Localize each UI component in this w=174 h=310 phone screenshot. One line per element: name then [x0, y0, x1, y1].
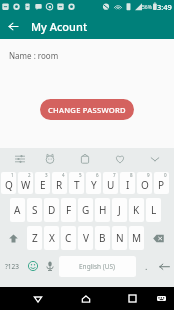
- staticText: Q: [5, 178, 13, 192]
- staticText: 3:49: [157, 2, 172, 12]
- button[interactable]: A: [10, 198, 25, 222]
- staticText: C: [65, 231, 72, 245]
- staticText: U: [107, 178, 115, 192]
- button[interactable]: M: [129, 226, 144, 250]
- staticText: B: [99, 231, 106, 245]
- staticText: Y: [91, 178, 97, 192]
- button[interactable]: D: [44, 198, 59, 222]
- staticText: 7: [113, 172, 116, 178]
- button[interactable]: G: [78, 198, 93, 222]
- staticText: P: [158, 178, 165, 192]
- staticText: 1: [11, 172, 14, 178]
- button[interactable]: Stickers: [39, 148, 61, 170]
- staticText: G: [82, 203, 90, 217]
- staticText: L: [151, 203, 157, 217]
- button[interactable]: Z: [27, 226, 42, 250]
- button[interactable]: Emoji: [24, 252, 42, 280]
- button[interactable]: Period: [137, 252, 155, 280]
- button[interactable]: Home: [75, 287, 97, 310]
- button[interactable]: H: [95, 198, 110, 222]
- staticText: W: [21, 178, 31, 192]
- button[interactable]: Y: [86, 172, 101, 194]
- staticText: 0: [164, 172, 167, 178]
- staticText: 5: [79, 172, 82, 178]
- button[interactable]: CHANGE PASSWORD: [40, 99, 134, 120]
- staticText: 3: [45, 172, 48, 178]
- staticText: V: [83, 231, 89, 245]
- staticText: E: [40, 178, 46, 192]
- staticText: ?123: [5, 262, 19, 271]
- button[interactable]: T: [69, 172, 84, 194]
- button[interactable]: English (US): [59, 256, 136, 277]
- staticText: O: [141, 178, 149, 192]
- button[interactable]: J: [112, 198, 127, 222]
- button[interactable]: Q: [1, 172, 16, 194]
- staticText: H: [99, 203, 107, 217]
- button[interactable]: Back: [0, 14, 27, 39]
- staticText: My Acount: [31, 19, 88, 34]
- button[interactable]: Favorites: [109, 148, 131, 170]
- button[interactable]: P: [154, 172, 169, 194]
- staticText: 6: [96, 172, 99, 178]
- button[interactable]: X: [44, 226, 59, 250]
- staticText: J: [118, 203, 121, 217]
- button[interactable]: Enter: [155, 252, 174, 280]
- staticText: 4: [62, 172, 65, 178]
- staticText: 8: [130, 172, 133, 178]
- staticText: M: [132, 231, 142, 245]
- button[interactable]: F: [61, 198, 76, 222]
- button[interactable]: I: [120, 172, 135, 194]
- button[interactable]: K: [129, 198, 144, 222]
- staticText: X: [49, 231, 55, 245]
- staticText: Name : room: [9, 50, 59, 61]
- staticText: CHANGE PASSWORD: [48, 105, 126, 115]
- button[interactable]: Voice input: [42, 252, 58, 280]
- button[interactable]: B: [95, 226, 110, 250]
- button[interactable]: S: [27, 198, 42, 222]
- button[interactable]: Shift: [0, 224, 26, 252]
- button[interactable]: Change keyboard: [151, 287, 171, 310]
- staticText: I: [126, 178, 130, 192]
- staticText: Z: [32, 231, 38, 245]
- staticText: English (US): [79, 262, 116, 271]
- button[interactable]: Backspace: [145, 224, 171, 252]
- staticText: 56%: [142, 4, 152, 11]
- button[interactable]: V: [78, 226, 93, 250]
- staticText: S: [32, 203, 38, 217]
- button[interactable]: C: [61, 226, 76, 250]
- button[interactable]: E: [35, 172, 50, 194]
- staticText: T: [74, 178, 80, 192]
- staticText: 2: [28, 172, 31, 178]
- staticText: N: [116, 231, 124, 245]
- button[interactable]: Recent apps: [121, 287, 143, 310]
- button[interactable]: W: [18, 172, 33, 194]
- button[interactable]: O: [137, 172, 152, 194]
- button[interactable]: U: [103, 172, 118, 194]
- button[interactable]: R: [52, 172, 67, 194]
- button[interactable]: L: [146, 198, 161, 222]
- staticText: A: [14, 203, 21, 217]
- button[interactable]: GIF: [74, 148, 96, 170]
- staticText: 9: [147, 172, 150, 178]
- staticText: D: [48, 203, 56, 217]
- staticText: R: [56, 178, 63, 192]
- button[interactable]: Back: [27, 287, 49, 310]
- staticText: .: [145, 260, 148, 272]
- button[interactable]: ?123: [0, 252, 24, 280]
- button[interactable]: Collapse: [144, 148, 166, 170]
- button[interactable]: Settings: [9, 148, 31, 170]
- staticText: F: [66, 203, 72, 217]
- button[interactable]: N: [112, 226, 127, 250]
- staticText: K: [133, 203, 140, 217]
